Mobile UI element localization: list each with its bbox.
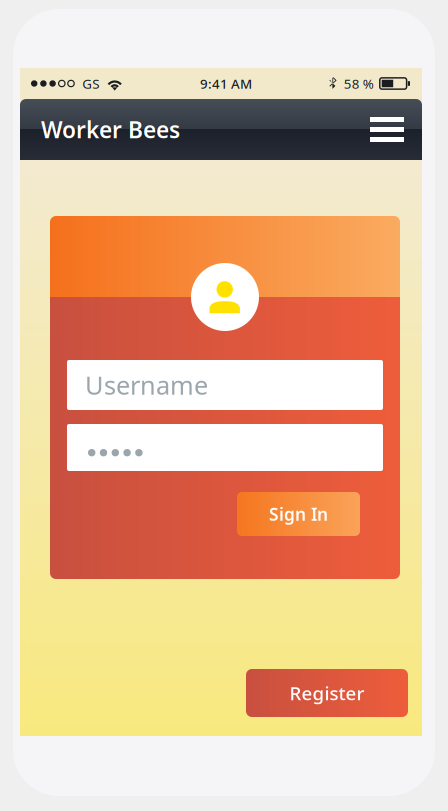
staticText: 58 % — [344, 75, 374, 92]
button[interactable]: Password — [67, 424, 383, 471]
button[interactable]: Sign In — [237, 492, 360, 536]
button[interactable]: Menu — [361, 99, 413, 160]
staticText: Sign In — [269, 502, 328, 525]
staticText: GS — [82, 75, 99, 92]
staticText: Worker Bees — [41, 114, 180, 144]
staticText: 9:41 AM — [200, 75, 252, 92]
staticText: Username — [85, 368, 208, 402]
staticText: Register — [289, 681, 364, 705]
button[interactable]: Register — [246, 669, 408, 717]
button[interactable]: Username — [67, 360, 383, 410]
